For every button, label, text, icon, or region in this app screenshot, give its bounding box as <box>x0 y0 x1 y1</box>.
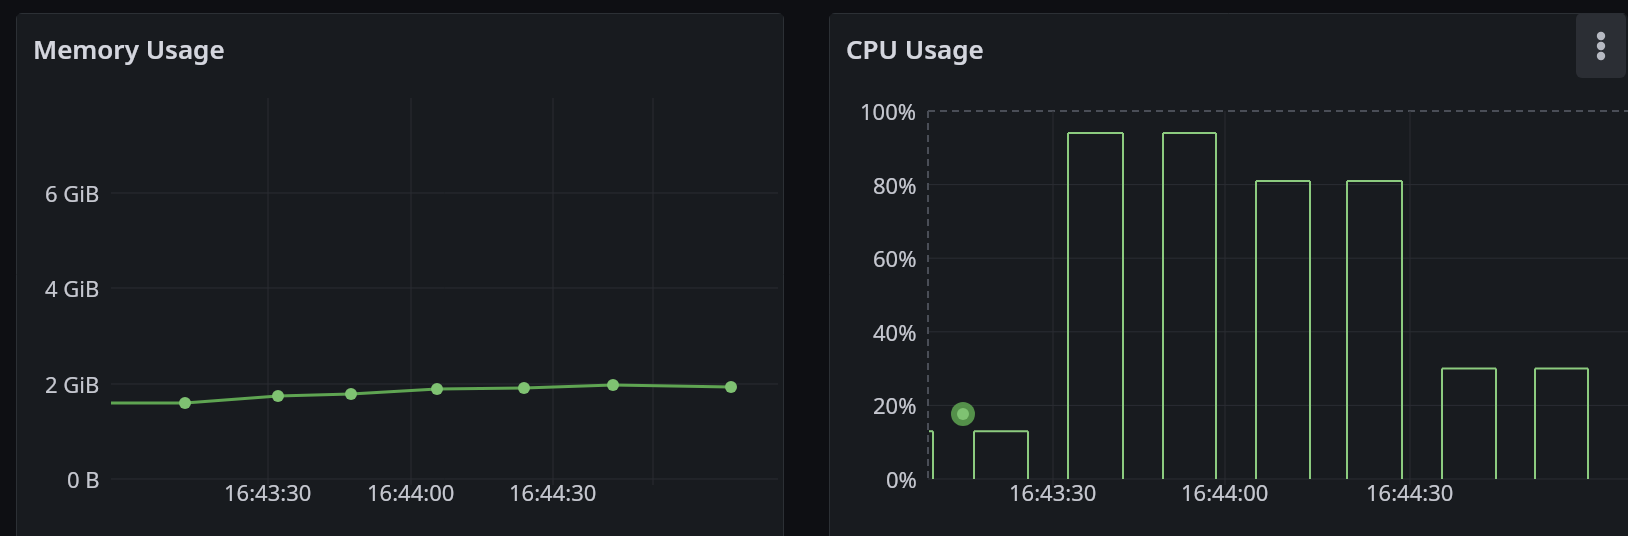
button[interactable]: Panel menu <box>829 13 1628 536</box>
button[interactable]: Panel menu <box>1576 13 1626 78</box>
button[interactable] <box>16 13 784 536</box>
